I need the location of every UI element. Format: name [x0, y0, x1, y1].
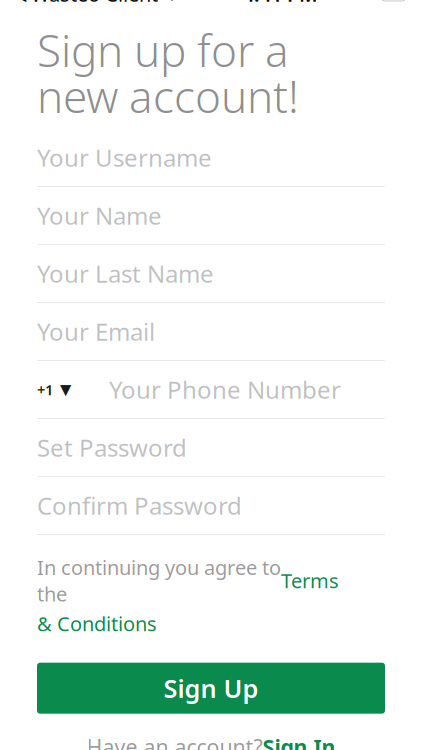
staticText: Your Phone Number	[109, 374, 341, 405]
staticText: Confirm Password	[37, 490, 242, 521]
staticText: ◀	[13, 0, 26, 4]
staticText: Sign In	[262, 733, 335, 750]
staticText: Your Name	[37, 200, 162, 231]
staticText: Your Username	[37, 142, 212, 173]
staticText: Set Password	[37, 432, 187, 463]
staticText: Sign Up	[163, 671, 258, 705]
button[interactable]: Sign Up	[37, 663, 385, 714]
button[interactable]: Terms	[281, 567, 339, 594]
staticText: Terms	[281, 567, 339, 594]
staticText: Your Email	[37, 316, 155, 347]
staticText: & Conditions	[37, 610, 157, 637]
staticText: Your Last Name	[37, 258, 214, 289]
staticText: In continuing you agree to the	[37, 554, 281, 607]
button[interactable]: Have an account?	[0, 733, 422, 750]
staticText: ▼	[60, 381, 71, 398]
button[interactable]: Select country code	[37, 361, 71, 418]
staticText: Have an account?	[86, 733, 262, 750]
staticText: Wasteo Client	[31, 0, 158, 7]
staticText: new account!	[37, 67, 299, 125]
button[interactable]: & Conditions	[37, 610, 157, 637]
staticText: 4:41 PM	[243, 0, 318, 7]
staticText: Sign up for a	[37, 21, 289, 79]
staticText: +1	[37, 380, 53, 399]
